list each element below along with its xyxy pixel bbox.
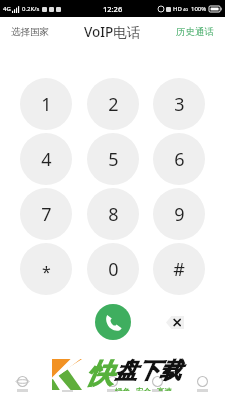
button[interactable]: Delete (160, 307, 190, 337)
button[interactable]: 9 (153, 188, 205, 240)
staticText: HD (173, 5, 182, 13)
button[interactable]: 3 (153, 78, 205, 130)
staticText: 4G (3, 5, 11, 13)
button[interactable]: 1 (20, 78, 72, 130)
staticText: 0.2K/s (22, 5, 40, 13)
button[interactable]: 2 (87, 78, 139, 130)
staticText: 7 (41, 202, 52, 227)
staticText: 历史通话 (176, 26, 214, 38)
button[interactable] (0, 375, 45, 392)
button[interactable]: 6 (153, 133, 205, 185)
staticText: 盘下载 (115, 357, 181, 385)
staticText: * (42, 261, 51, 283)
staticText: 2 (108, 92, 119, 117)
staticText: 5 (108, 147, 119, 172)
staticText: 绿色 · 安全 · 高速 (115, 386, 173, 391)
staticText: # (173, 257, 185, 282)
button[interactable]: 选择国家 (0, 22, 60, 42)
staticText: 0 (108, 257, 119, 282)
staticText: 4 (41, 147, 52, 172)
button[interactable]: 5 (87, 133, 139, 185)
button[interactable]: 0 (87, 243, 139, 295)
staticText: 8 (108, 202, 119, 227)
button[interactable]: * (20, 243, 72, 295)
button[interactable] (90, 375, 135, 392)
staticText: 快 (86, 357, 113, 391)
button[interactable] (180, 375, 225, 392)
staticText: 100% (191, 5, 207, 13)
button[interactable] (45, 375, 90, 392)
button[interactable]: 4 (20, 133, 72, 185)
button[interactable]: Call (95, 304, 131, 340)
staticText: 3 (174, 92, 185, 117)
button[interactable]: 历史通话 (165, 22, 225, 42)
staticText: 12:26 (103, 4, 123, 14)
staticText: 4G (183, 7, 189, 12)
staticText: 1 (41, 92, 52, 117)
button[interactable]: # (153, 243, 205, 295)
staticText: 9 (174, 202, 185, 227)
button[interactable]: 7 (20, 188, 72, 240)
staticText: 6 (174, 147, 185, 172)
button[interactable] (135, 375, 180, 392)
button[interactable]: 8 (87, 188, 139, 240)
staticText: VoIP电话 (84, 23, 141, 41)
staticText: 选择国家 (11, 26, 49, 38)
